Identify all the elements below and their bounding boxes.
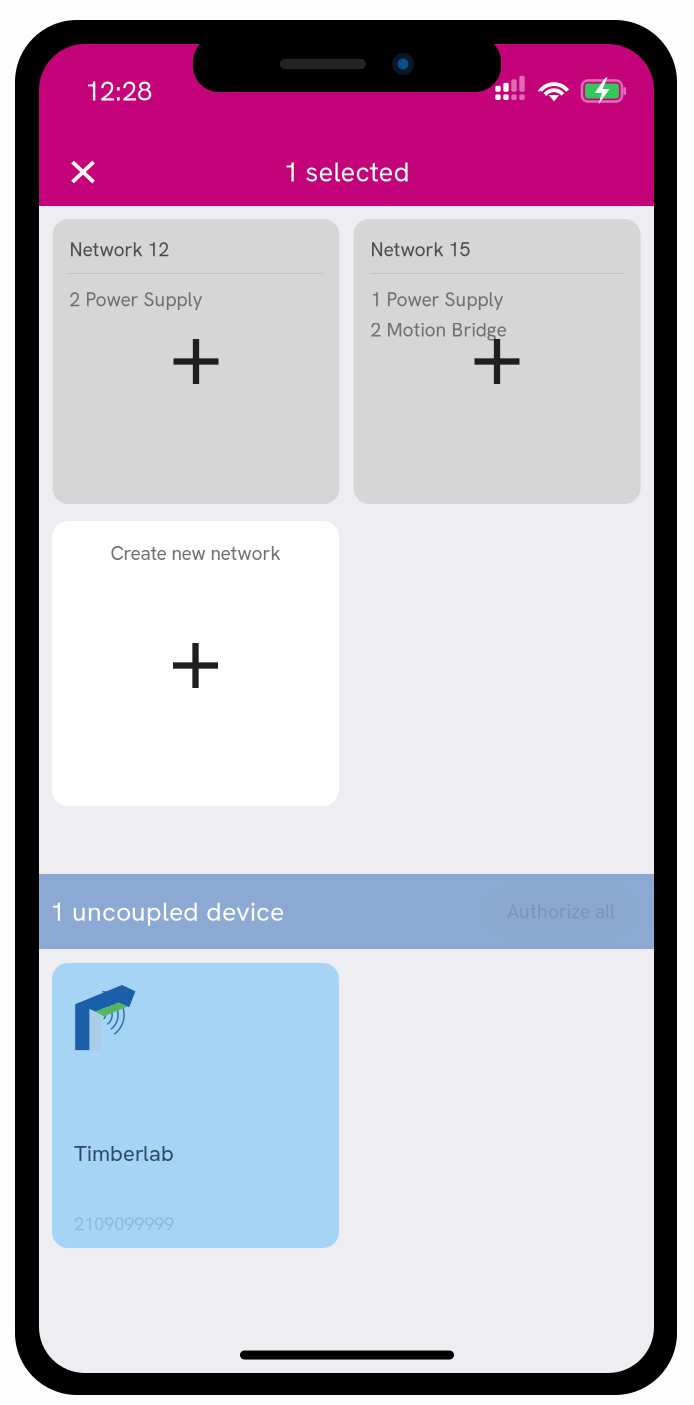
- button[interactable]: Close: [55, 144, 111, 200]
- button[interactable]: Authorize all: [481, 883, 641, 940]
- button[interactable]: Create new network: [52, 521, 339, 806]
- staticText: 2109099999: [74, 1212, 174, 1236]
- staticText: 1 Power Supply: [370, 287, 503, 312]
- staticText: Timberlab: [74, 1139, 174, 1168]
- staticText: Network 12: [69, 237, 169, 262]
- staticText: Create new network: [110, 541, 280, 566]
- staticText: 1 uncoupled device: [50, 894, 284, 929]
- staticText: 12:28: [85, 73, 152, 109]
- staticText: 1 selected: [283, 154, 409, 190]
- staticText: 2 Power Supply: [69, 287, 202, 312]
- staticText: Authorize all: [507, 899, 615, 924]
- button[interactable]: Network 15: [353, 219, 640, 504]
- staticText: 2 Motion Bridge: [370, 317, 506, 342]
- button[interactable]: Timberlab: [52, 963, 339, 1248]
- button[interactable]: Network 12: [52, 219, 339, 504]
- staticText: Network 15: [370, 237, 470, 262]
